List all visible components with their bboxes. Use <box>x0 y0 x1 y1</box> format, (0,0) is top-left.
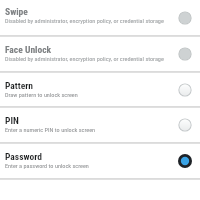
button[interactable]: Swipe <box>0 0 200 35</box>
staticText: Draw pattern to unlock screen <box>5 91 78 98</box>
button[interactable]: Password <box>0 144 200 178</box>
button[interactable]: Face Unlock <box>0 37 200 71</box>
staticText: Enter a numeric PIN to unlock screen <box>5 126 96 133</box>
staticText: Disabled by administrator, encryption po… <box>5 17 164 24</box>
staticText: Pattern <box>5 80 34 91</box>
staticText: Face Unlock <box>5 44 52 55</box>
button[interactable]: PIN <box>0 108 200 142</box>
staticText: Swipe <box>5 6 28 17</box>
staticText: Disabled by administrator, encryption po… <box>5 55 164 62</box>
staticText: PIN <box>5 115 19 126</box>
button[interactable]: Pattern <box>0 73 200 106</box>
staticText: Password <box>5 151 42 162</box>
staticText: Enter a password to unlock screen <box>5 162 89 169</box>
